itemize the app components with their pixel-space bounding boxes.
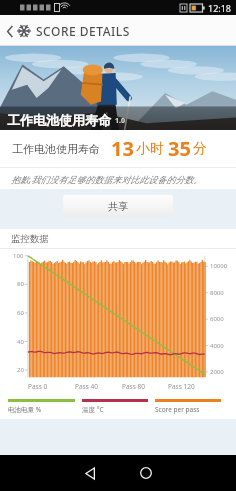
- staticText: 6000: [210, 315, 224, 323]
- staticText: 分: [193, 140, 207, 158]
- staticText: 4000: [210, 342, 224, 350]
- button[interactable]: Home: [126, 455, 166, 491]
- button[interactable]: 共享: [63, 195, 173, 217]
- staticText: 抱歉,我们没有足够的数据来对比此设备的分数。: [11, 173, 203, 185]
- button[interactable]: Back: [2, 17, 17, 45]
- staticText: 12:18: [208, 2, 232, 14]
- staticText: 电池电量 %: [8, 405, 42, 414]
- staticText: 共享: [108, 200, 128, 213]
- staticText: 温度 °C: [82, 405, 104, 414]
- staticText: 工作电池使用寿命: [12, 142, 100, 156]
- staticText: Pass 40: [75, 382, 98, 391]
- staticText: 工作电池使用寿命: [7, 112, 111, 128]
- staticText: Score per pass: [155, 405, 200, 414]
- staticText: 小时: [136, 140, 164, 158]
- staticText: 40: [17, 338, 24, 346]
- staticText: 10000: [210, 262, 228, 270]
- staticText: 13: [111, 135, 134, 162]
- staticText: 1.0: [115, 116, 125, 126]
- staticText: SCORE DETAILS: [36, 23, 130, 39]
- staticText: 监控数据: [11, 233, 49, 245]
- staticText: 60: [17, 309, 24, 317]
- button[interactable]: Back: [70, 455, 110, 491]
- staticText: 80: [17, 280, 24, 288]
- staticText: Pass 80: [122, 382, 145, 391]
- staticText: 2000: [210, 368, 224, 376]
- staticText: Pass 120: [168, 382, 195, 391]
- staticText: Pass 0: [28, 382, 48, 391]
- staticText: 20: [17, 366, 24, 374]
- staticText: 8000: [210, 289, 224, 297]
- staticText: 35: [168, 135, 191, 162]
- staticText: 100: [13, 252, 24, 260]
